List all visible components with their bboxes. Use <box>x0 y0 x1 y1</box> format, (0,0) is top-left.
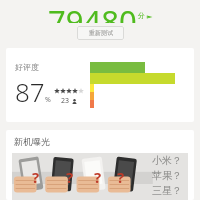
other: Details <box>145 16 152 18</box>
staticText: 重新测试 <box>89 29 113 37</box>
staticText: % <box>45 95 51 105</box>
staticText: ? <box>66 167 74 187</box>
button[interactable]: 好评度 <box>6 48 194 122</box>
staticText: 苹果？ <box>152 169 182 182</box>
staticText: 好评度 <box>15 62 39 72</box>
staticText: 分 <box>138 11 145 20</box>
staticText: 79480 <box>48 0 137 23</box>
button[interactable]: 新机曝光 <box>6 130 194 153</box>
staticText: 三星？ <box>152 184 182 197</box>
staticText: ? <box>32 167 40 187</box>
button[interactable]: 重新测试 <box>77 26 124 40</box>
staticText: 23 <box>61 96 70 106</box>
staticText: 新机曝光 <box>14 136 50 147</box>
staticText: ? <box>117 167 125 187</box>
staticText: ? <box>94 167 102 187</box>
staticText: 87 <box>15 74 45 109</box>
button[interactable]: ? <box>12 153 188 200</box>
staticText: 小米？ <box>152 154 182 167</box>
